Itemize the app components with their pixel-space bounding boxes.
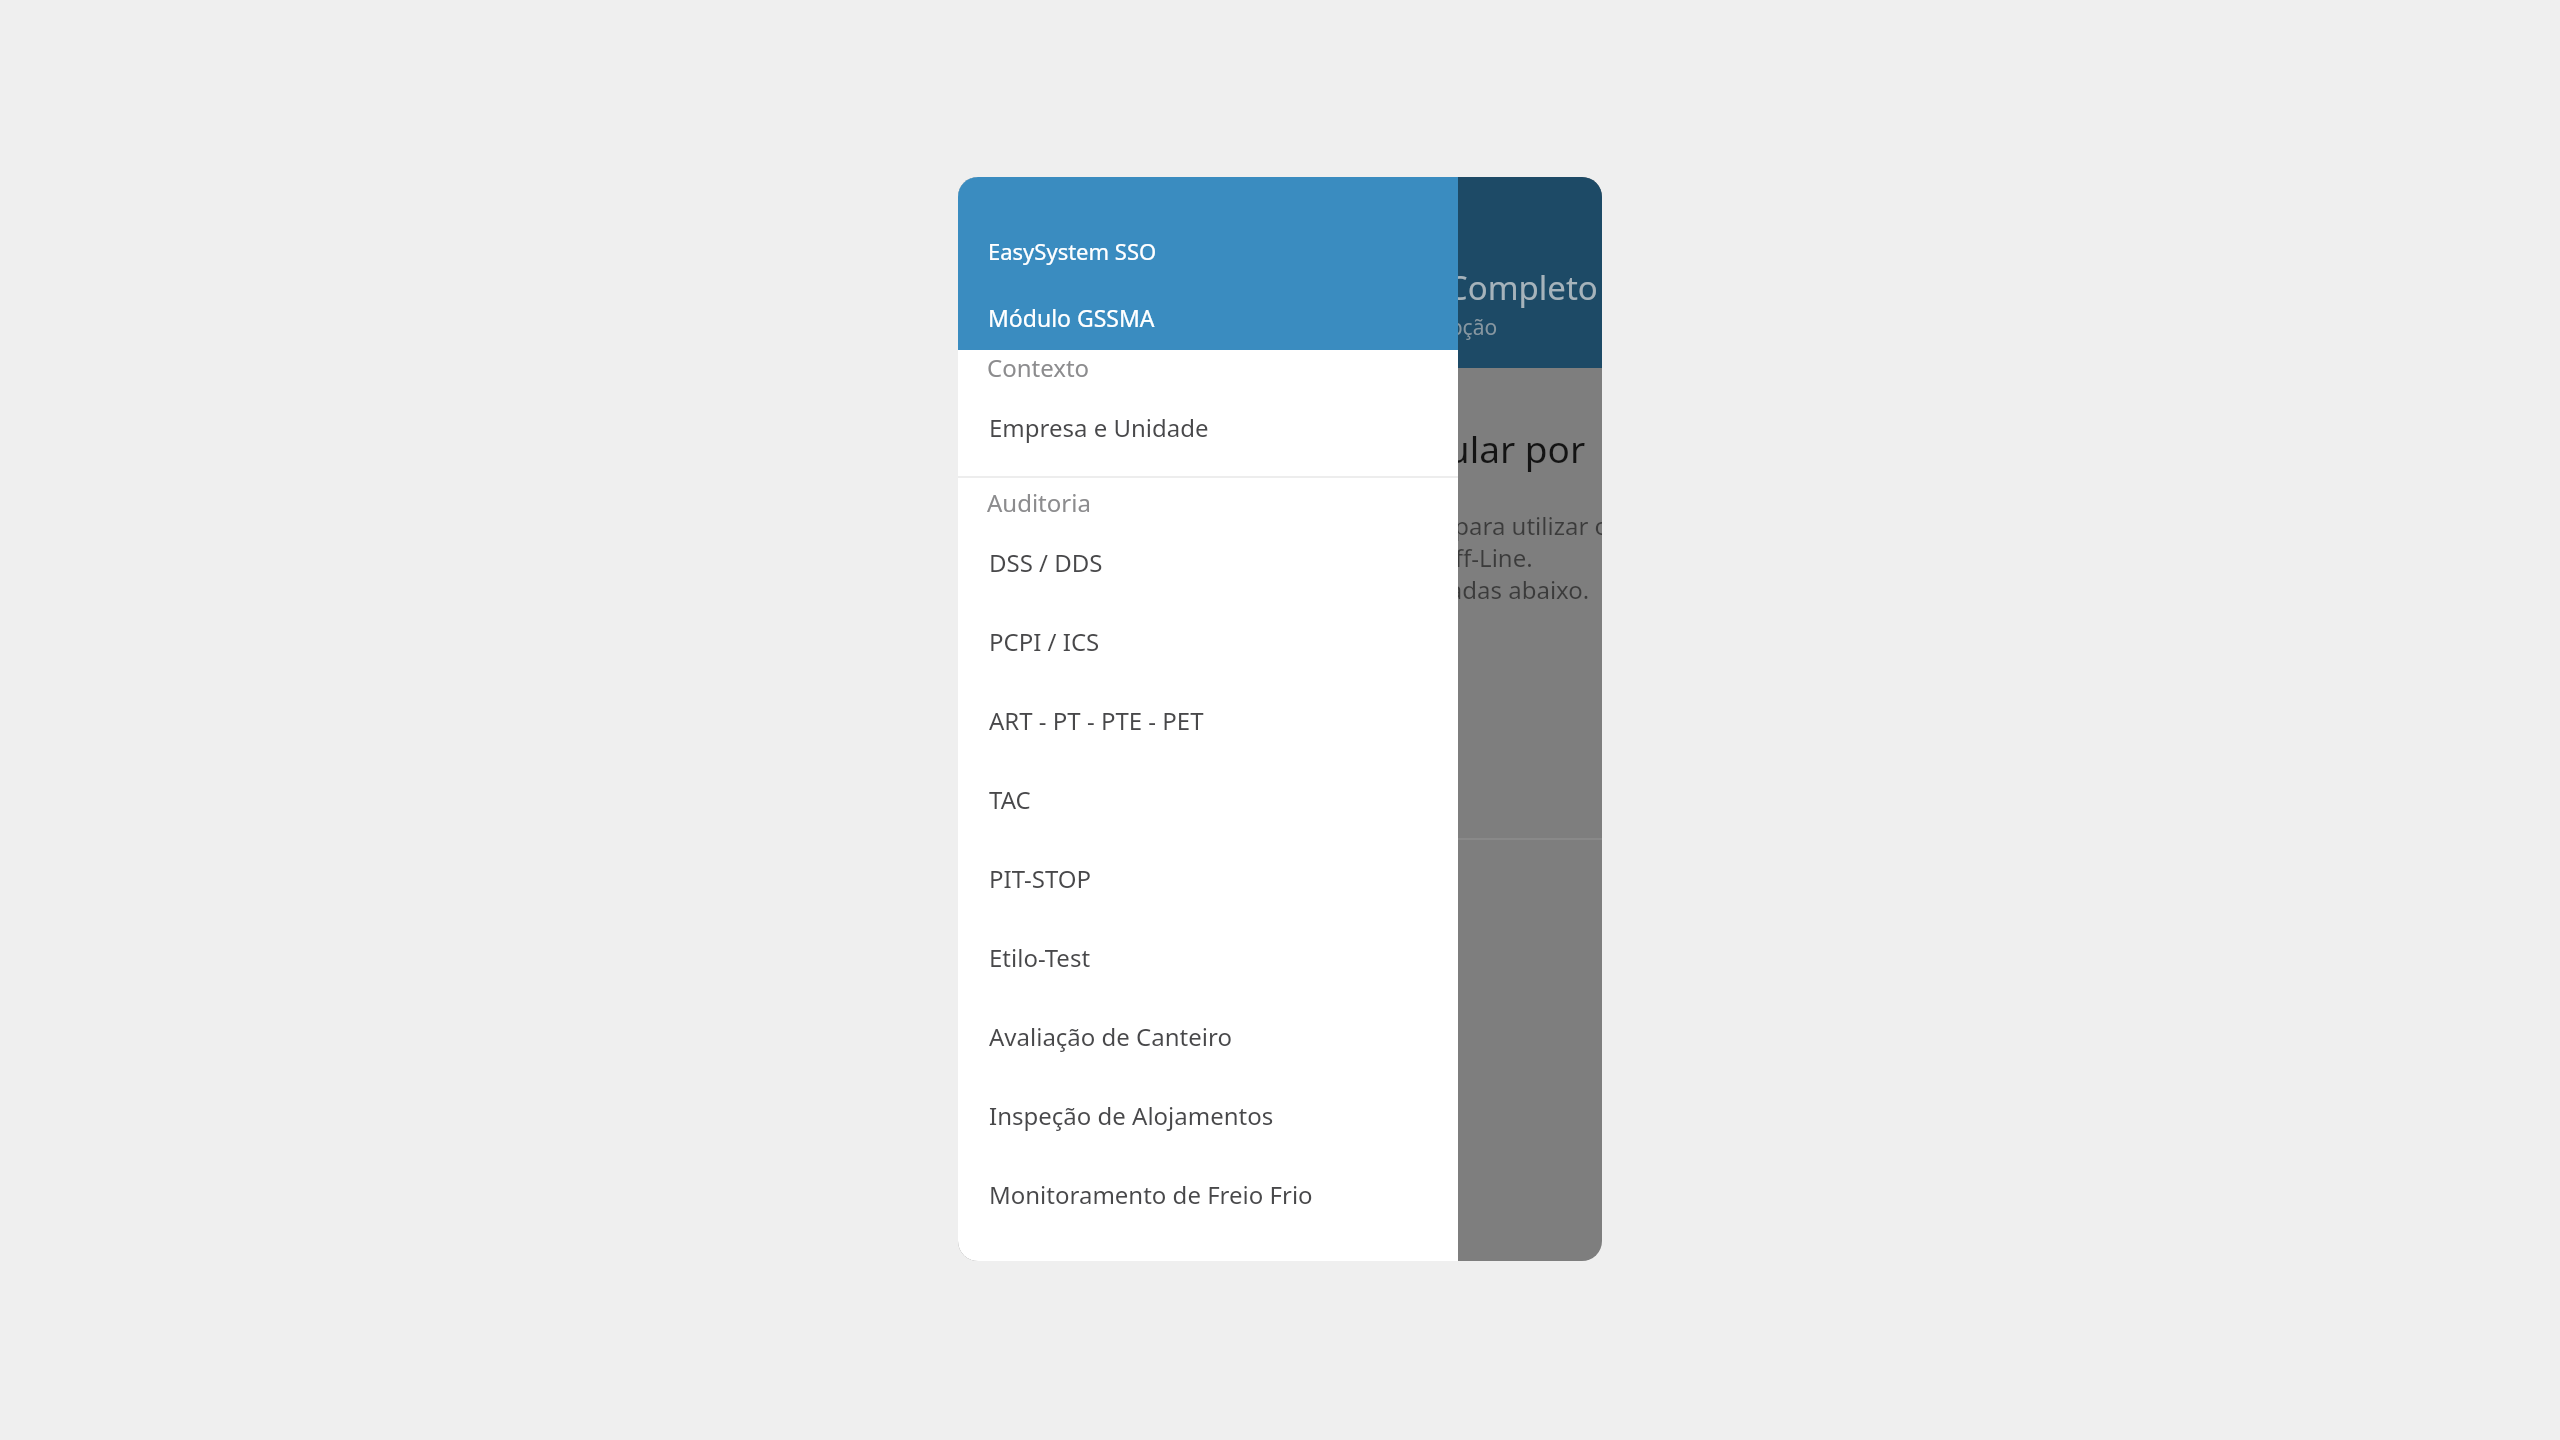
staticText: Módulo GSSMA [988, 302, 1155, 333]
staticText: É necessário habilitar para utilizar o a… [1208, 509, 1602, 606]
staticText: Etilo-Test [989, 941, 1091, 974]
button[interactable]: PIT-STOP [958, 839, 1458, 918]
button[interactable]: Etilo-Test [958, 918, 1458, 997]
staticText: Avaliação de Canteiro [989, 1020, 1232, 1053]
staticText: TAC [989, 783, 1031, 816]
button[interactable]: TAC [958, 760, 1458, 839]
button[interactable]: Empresa e Unidade [958, 388, 1458, 467]
button[interactable]: Avaliação de Canteiro [958, 997, 1458, 1076]
staticText: DSS / DDS [989, 546, 1103, 579]
button[interactable]: PCPI / ICS [958, 602, 1458, 681]
button[interactable]: Monitoramento de Freio Frio [958, 1155, 1458, 1234]
staticText: Contexto [987, 351, 1090, 384]
staticText: Selecione uma opção [1288, 313, 1498, 342]
staticText: Empresa e Unidade [989, 411, 1209, 444]
staticText: Habilitar o celular por [1208, 423, 1586, 473]
staticText: Inspeção de Alojamentos [989, 1099, 1274, 1132]
button[interactable]: ART - PT - PTE - PET [958, 681, 1458, 760]
button[interactable]: DSS / DDS [958, 523, 1458, 602]
staticText: Auditoria [987, 486, 1091, 519]
staticText: Ambiente Completo [1288, 265, 1598, 310]
staticText: Monitoramento de Freio Frio [989, 1178, 1313, 1211]
staticText: PCPI / ICS [989, 625, 1100, 658]
staticText: ART - PT - PTE - PET [989, 704, 1204, 737]
staticText: EasySystem SSO [988, 236, 1157, 266]
staticText: PIT-STOP [989, 862, 1092, 895]
button[interactable]: Módulo GSSMA [958, 284, 1458, 350]
button[interactable]: Inspeção de Alojamentos [958, 1076, 1458, 1155]
